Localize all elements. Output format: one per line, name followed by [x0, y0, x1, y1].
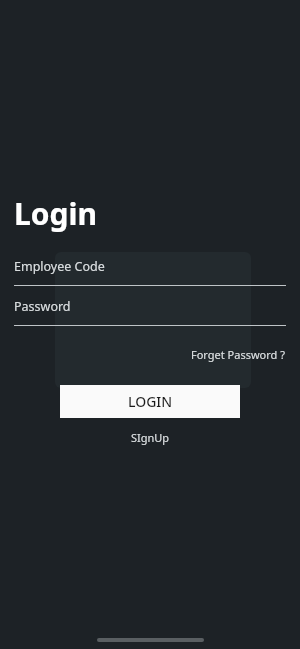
button[interactable]: Password — [14, 292, 286, 326]
staticText: SIgnUp — [131, 430, 170, 445]
button[interactable]: Forget Password ? — [189, 344, 287, 365]
staticText: Forget Password ? — [191, 347, 285, 362]
staticText: LOGIN — [128, 392, 173, 411]
other: Home indicator — [97, 638, 204, 642]
staticText: Password — [14, 298, 71, 315]
button[interactable]: SIgnUp — [125, 427, 176, 448]
staticText: Employee Code — [14, 258, 105, 275]
staticText: Login — [14, 193, 97, 234]
button[interactable]: Employee Code — [14, 252, 286, 286]
button[interactable]: LOGIN — [60, 385, 240, 418]
